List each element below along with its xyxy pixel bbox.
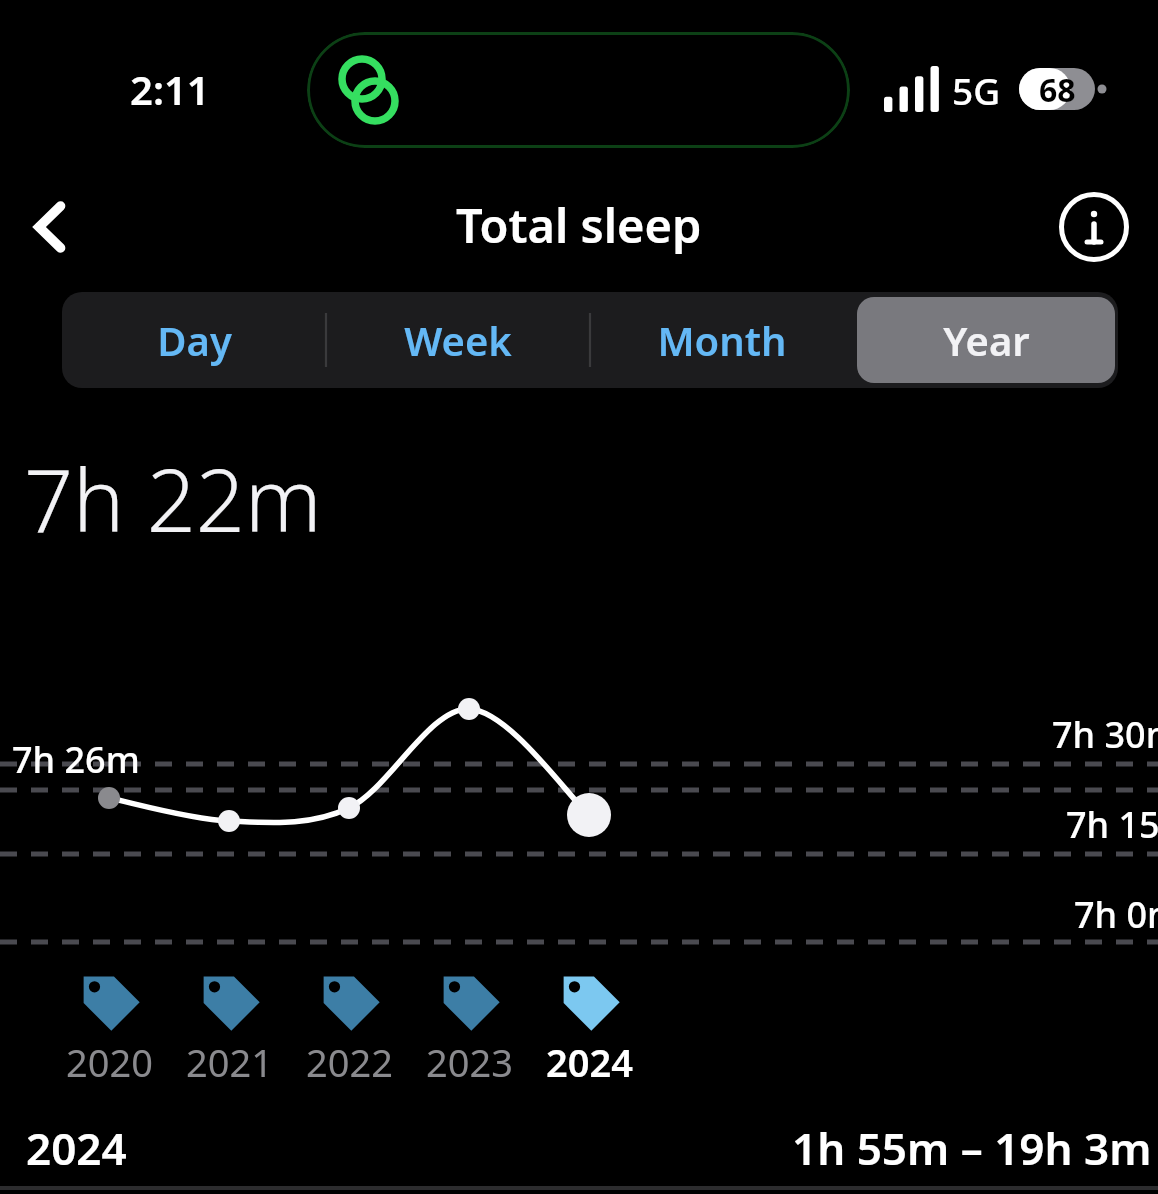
staticText: 5G (952, 65, 1001, 115)
button[interactable]: Year (857, 297, 1115, 383)
button[interactable]: Back (4, 180, 98, 274)
staticText: 2021 (186, 1036, 273, 1088)
staticText: Total sleep (456, 193, 702, 257)
staticText: 2020 (66, 1036, 153, 1088)
staticText: 2:11 (130, 62, 210, 116)
button[interactable]: Month (593, 297, 851, 383)
staticText: Month (657, 313, 787, 367)
button[interactable]: Week (329, 297, 587, 383)
button[interactable]: Information (1048, 181, 1140, 273)
button[interactable]: 2022 (289, 968, 409, 1088)
button[interactable]: 2023 (409, 968, 529, 1088)
staticText: Week (404, 313, 512, 367)
staticText: 7h 15m (1066, 800, 1158, 849)
button[interactable]: Day (65, 297, 323, 383)
staticText: 1h 55m – 19h 3m (792, 1118, 1152, 1178)
staticText: Year (943, 313, 1030, 367)
staticText: 2024 (26, 1118, 127, 1178)
staticText: 68 (1039, 68, 1076, 110)
staticText: 2022 (306, 1036, 393, 1088)
staticText: 7h 22m (24, 440, 322, 557)
button[interactable]: 2020 (49, 968, 169, 1088)
button[interactable]: 2021 (169, 968, 289, 1088)
staticText: 2023 (426, 1036, 513, 1088)
staticText: 7h 30m (1052, 710, 1158, 759)
staticText: 7h 26m (12, 735, 140, 784)
staticText: 2024 (546, 1036, 633, 1088)
staticText: 7h 0m (1074, 890, 1158, 939)
button[interactable]: 2024 (529, 968, 649, 1088)
staticText: Day (157, 313, 232, 367)
